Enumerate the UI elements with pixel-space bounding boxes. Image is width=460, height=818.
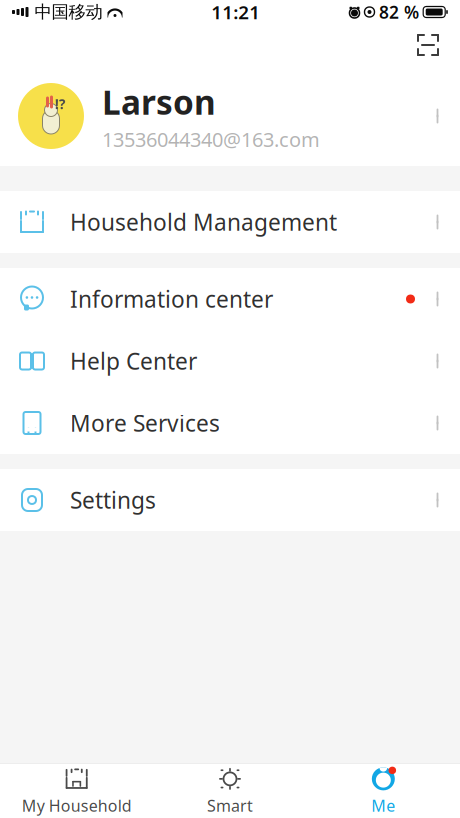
staticText: My Household bbox=[22, 795, 132, 816]
staticText: !? bbox=[55, 95, 65, 113]
staticText: 中国移动 bbox=[34, 1, 102, 23]
button[interactable]: Help Center bbox=[0, 330, 460, 392]
staticText: 11:21 bbox=[211, 0, 260, 24]
button[interactable]: Information center bbox=[0, 268, 460, 330]
button[interactable]: My Household bbox=[0, 764, 153, 818]
staticText: Household Management bbox=[70, 207, 337, 237]
button[interactable]: More Services bbox=[0, 392, 460, 454]
button[interactable]: Smart bbox=[153, 764, 307, 818]
staticText: Me bbox=[371, 795, 395, 816]
button[interactable]: Settings bbox=[0, 469, 460, 531]
staticText: More Services bbox=[70, 408, 220, 438]
button[interactable]: !? bbox=[0, 66, 460, 166]
staticText: Settings bbox=[70, 485, 156, 515]
staticText: Smart bbox=[207, 795, 253, 816]
staticText: Larson bbox=[102, 80, 216, 124]
button[interactable]: Household Management bbox=[0, 191, 460, 253]
staticText: Help Center bbox=[70, 346, 197, 376]
staticText: Information center bbox=[70, 284, 273, 314]
staticText: 82 % bbox=[379, 0, 419, 23]
button[interactable]: Me bbox=[307, 764, 460, 818]
staticText: 13536044340@163.com bbox=[102, 126, 320, 152]
button[interactable]: Scan QR code bbox=[406, 25, 450, 65]
